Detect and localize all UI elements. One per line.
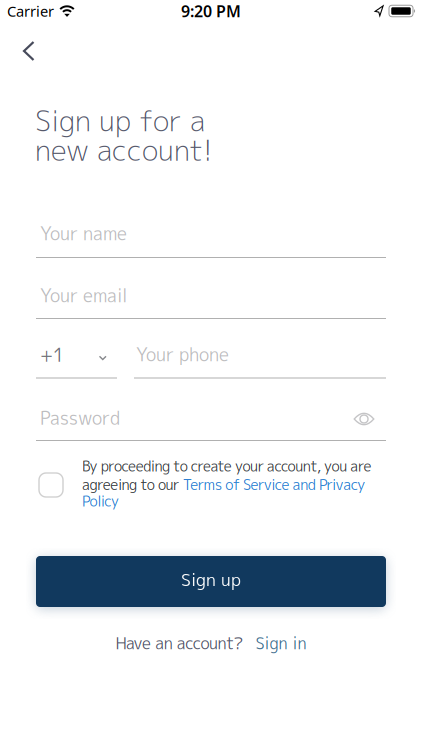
staticText: Your name bbox=[40, 221, 127, 246]
button[interactable]: Agree to terms bbox=[39, 473, 63, 497]
button[interactable]: Terms of Service and Privacy bbox=[183, 474, 365, 494]
staticText: Policy bbox=[82, 491, 119, 511]
staticText: By proceeding to create your account, yo… bbox=[82, 456, 371, 476]
staticText: 9:20 PM bbox=[181, 0, 241, 22]
button[interactable]: Back bbox=[11, 33, 47, 69]
button[interactable]: Country code bbox=[40, 342, 106, 367]
staticText: Password bbox=[40, 405, 120, 430]
staticText: Your phone bbox=[136, 342, 229, 367]
button[interactable]: Sign in bbox=[256, 632, 307, 654]
button[interactable]: Show password bbox=[350, 407, 378, 431]
staticText: Sign in bbox=[256, 632, 307, 654]
staticText: Terms of Service and Privacy bbox=[183, 474, 365, 494]
staticText: Your email bbox=[40, 283, 127, 308]
staticText: +1 bbox=[40, 342, 64, 367]
staticText: agreeing to our bbox=[82, 474, 183, 494]
staticText: Sign up for a bbox=[35, 100, 205, 140]
button[interactable]: Policy bbox=[82, 491, 119, 511]
staticText: Sign up bbox=[181, 567, 241, 592]
staticText: Have an account? bbox=[115, 632, 244, 654]
staticText: Carrier bbox=[7, 1, 54, 21]
button[interactable]: Sign up bbox=[36, 556, 386, 607]
staticText: new account! bbox=[35, 130, 213, 170]
